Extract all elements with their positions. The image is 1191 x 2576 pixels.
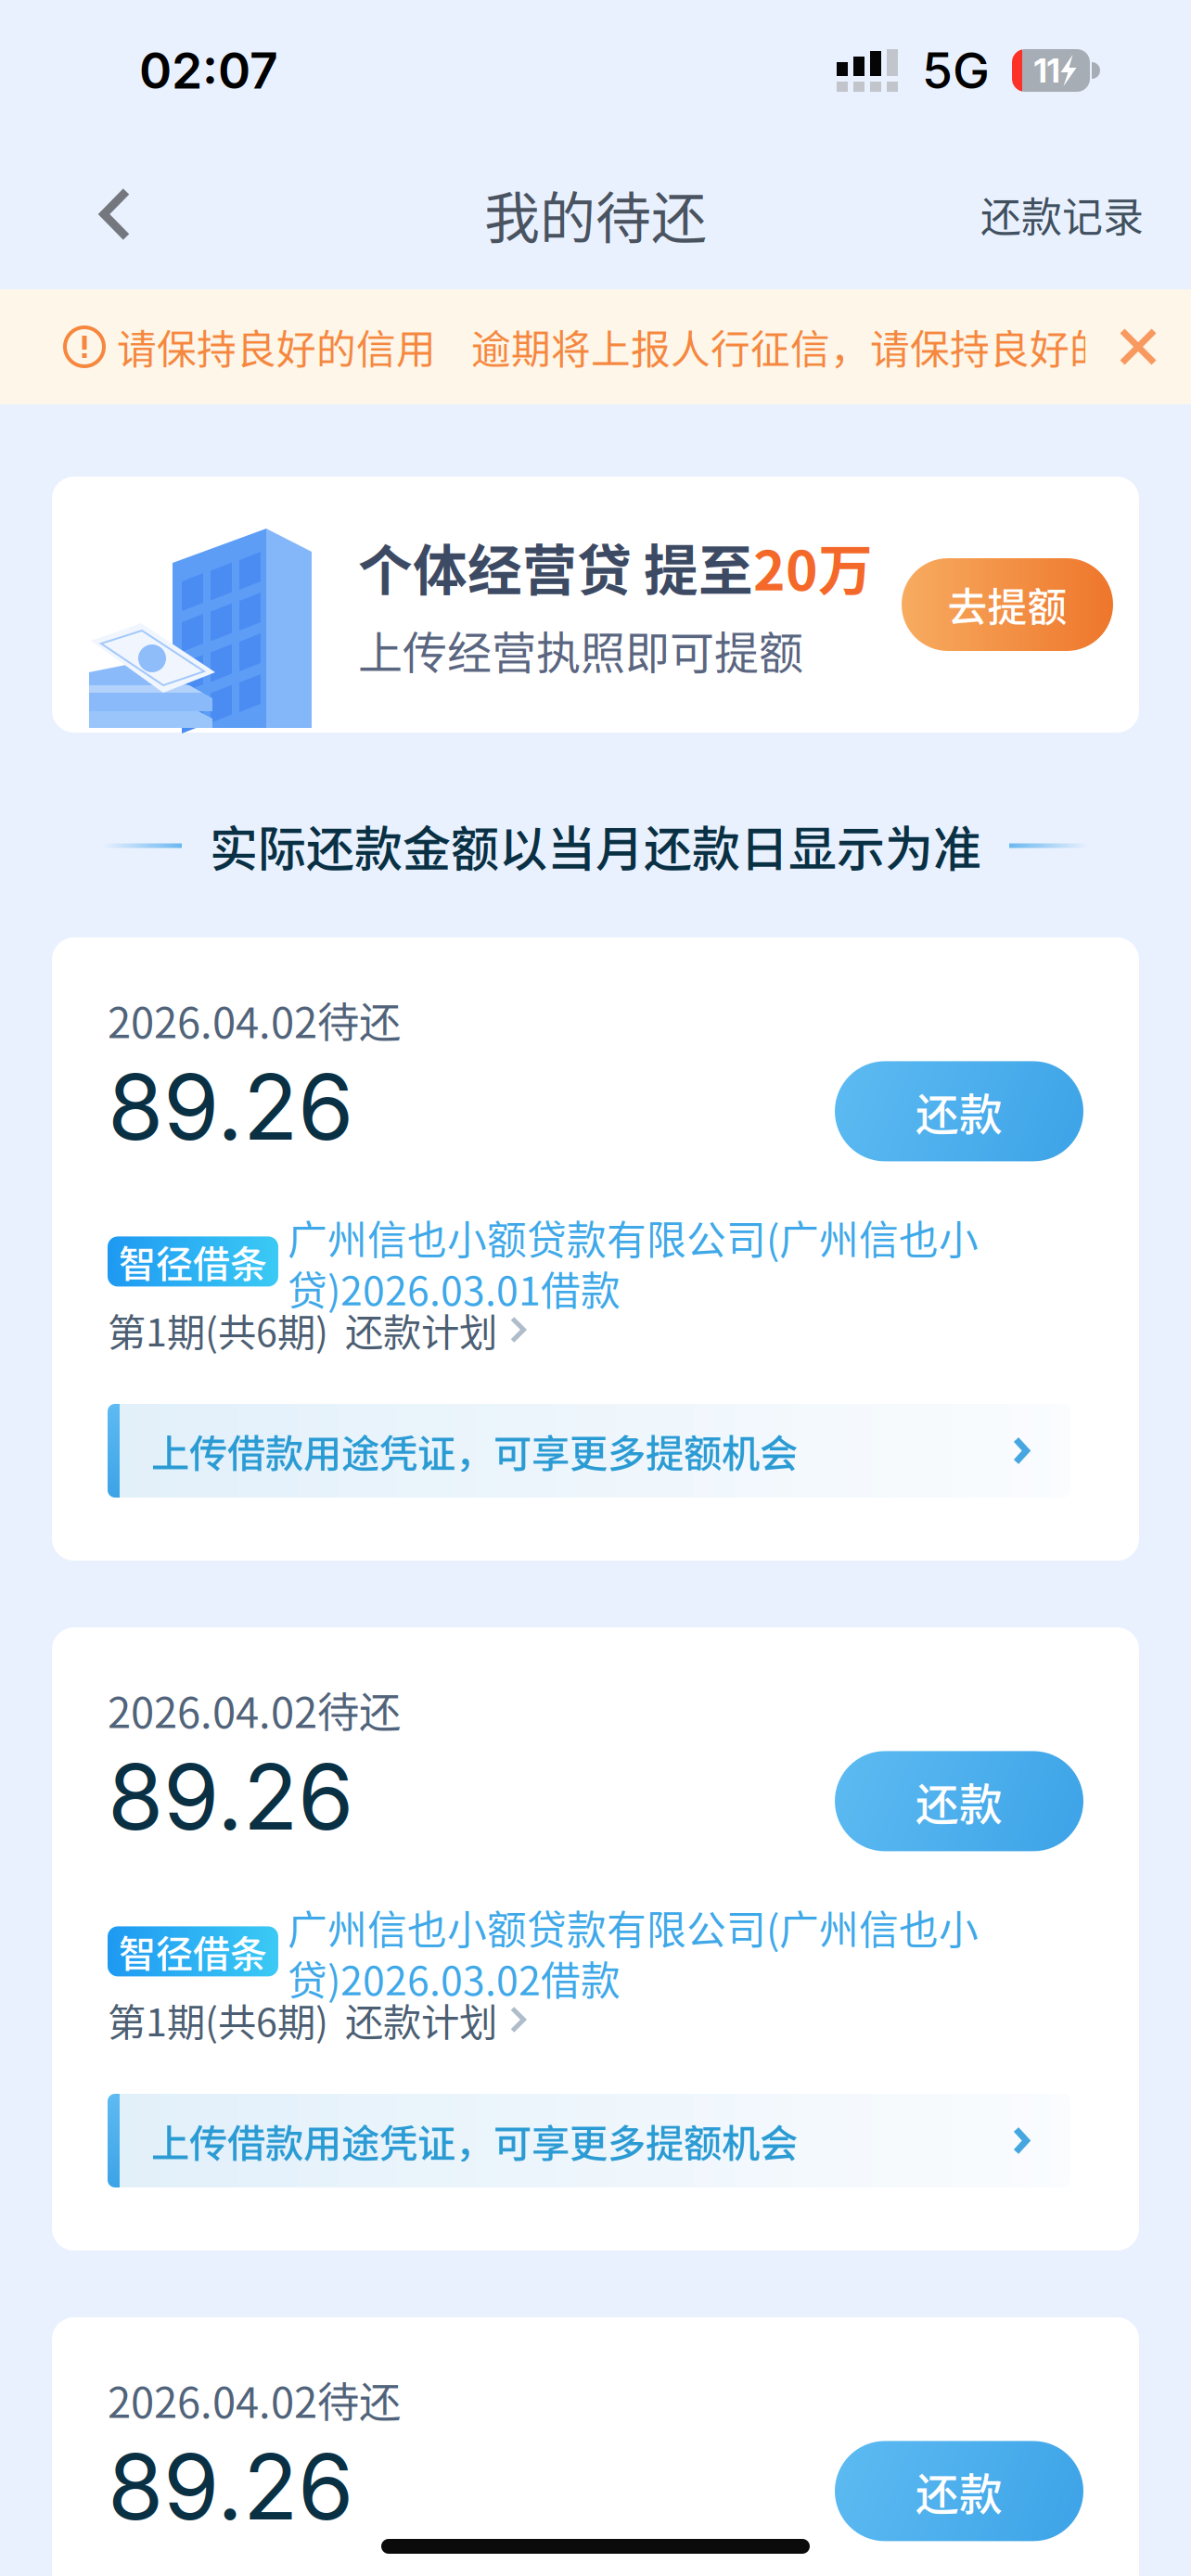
button[interactable]: 返回 bbox=[61, 163, 169, 265]
staticText: 89.26 bbox=[108, 1742, 353, 1851]
staticText: 智径借条 bbox=[119, 1925, 267, 1978]
staticText: 智径借条 bbox=[119, 1235, 267, 1288]
staticText: 去提额 bbox=[948, 576, 1067, 633]
button[interactable]: 上传借款用途凭证，可享更多提额机会 bbox=[52, 1404, 1139, 1498]
staticText: 第1期(共6期) 还款计划 bbox=[108, 1992, 497, 2047]
staticText: 2026.04.02待还 bbox=[108, 2369, 401, 2430]
staticText: 还款记录 bbox=[980, 185, 1144, 244]
staticText: 02:07 bbox=[139, 41, 278, 100]
button[interactable]: 第1期(共6期) 还款计划 bbox=[52, 1302, 1139, 1358]
staticText: 上传借款用途凭证，可享更多提额机会 bbox=[151, 1423, 798, 1478]
staticText: 还款 bbox=[916, 2460, 1003, 2522]
staticText: 贷)2026.03.02借款 bbox=[288, 1949, 621, 2007]
button[interactable]: 个体经营贷 提至 bbox=[52, 477, 1139, 733]
staticText: 广州信也小额贷款有限公司(广州信也小 bbox=[288, 1899, 979, 1956]
staticText: 我的待还 bbox=[484, 174, 707, 255]
staticText: 还款 bbox=[916, 1080, 1003, 1143]
staticText: 请保持良好的信用 bbox=[117, 318, 436, 375]
button[interactable]: 还款 bbox=[835, 1751, 1083, 1851]
staticText: 2026.04.02待还 bbox=[108, 989, 401, 1050]
staticText: 11 bbox=[1034, 50, 1060, 91]
button[interactable]: 还款记录 bbox=[956, 163, 1168, 265]
staticText: 个体经营贷 提至 bbox=[358, 527, 753, 606]
staticText: 89.26 bbox=[108, 2432, 353, 2541]
staticText: 20万 bbox=[753, 527, 873, 606]
button[interactable]: 第1期(共6期) 还款计划 bbox=[52, 1992, 1139, 2047]
staticText: 贷)2026.03.01借款 bbox=[288, 1259, 621, 1317]
staticText: 广州信也小额贷款有限公司(广州信也小 bbox=[288, 1209, 979, 1266]
staticText: 上传经营执照即可提额 bbox=[358, 617, 803, 682]
staticText: 还款 bbox=[916, 1770, 1003, 1833]
staticText: 89.26 bbox=[108, 1052, 353, 1161]
staticText: 实际还款金额以当月还款日显示为准 bbox=[210, 811, 981, 881]
button[interactable]: 还款 bbox=[835, 2441, 1083, 2541]
staticText: 第1期(共6期) 还款计划 bbox=[108, 1302, 497, 1357]
button[interactable]: 上传借款用途凭证，可享更多提额机会 bbox=[52, 2094, 1139, 2187]
button[interactable]: 还款 bbox=[835, 1061, 1083, 1161]
staticText: 逾期将上报人行征信，请保持良好的信 bbox=[471, 318, 1149, 375]
staticText: 5G bbox=[922, 41, 990, 100]
staticText: 上传借款用途凭证，可享更多提额机会 bbox=[151, 2113, 798, 2168]
button[interactable]: 关闭 bbox=[1085, 289, 1191, 404]
staticText: 2026.04.02待还 bbox=[108, 1679, 401, 1740]
